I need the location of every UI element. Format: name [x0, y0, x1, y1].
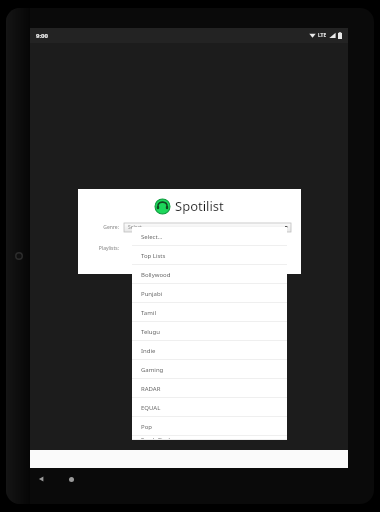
staticText: Telugu	[141, 328, 160, 336]
other: Spotilist logo	[155, 199, 170, 214]
staticText: Spotilist	[175, 197, 224, 215]
staticText: LTE	[318, 32, 327, 39]
button[interactable]: Top Lists	[132, 246, 287, 265]
staticText: Select...	[141, 233, 163, 241]
button[interactable]: EQUAL	[132, 398, 287, 417]
button[interactable]: Indie	[132, 341, 287, 360]
staticText: Gaming	[141, 366, 164, 374]
button[interactable]: Telugu	[132, 322, 287, 341]
staticText: Bollywood	[141, 271, 171, 279]
staticText: 9:00	[36, 32, 48, 40]
staticText: Genre:	[87, 224, 119, 231]
button[interactable]: Select...	[124, 223, 291, 232]
staticText: EQUAL	[141, 404, 161, 412]
button[interactable]: Punjabi	[132, 284, 287, 303]
button[interactable]: Select...	[132, 227, 287, 246]
staticText: Select...	[128, 224, 146, 231]
staticText: Punjabi	[141, 290, 163, 298]
button[interactable]: Gaming	[132, 360, 287, 379]
button[interactable]: Fresh Finds	[132, 436, 287, 440]
button[interactable]: Back	[30, 468, 52, 490]
staticText: Fresh Finds	[141, 436, 173, 440]
button[interactable]: Tamil	[132, 303, 287, 322]
button[interactable]: Home	[60, 468, 82, 490]
staticText: Top Lists	[141, 252, 166, 260]
staticText: Playlists:	[87, 245, 119, 252]
staticText: Indie	[141, 347, 156, 355]
staticText: Pop	[141, 423, 152, 431]
staticText: Tamil	[141, 309, 156, 317]
button[interactable]: Pop	[132, 417, 287, 436]
button[interactable]: RADAR	[132, 379, 287, 398]
staticText: RADAR	[141, 385, 161, 393]
button[interactable]: Bollywood	[132, 265, 287, 284]
